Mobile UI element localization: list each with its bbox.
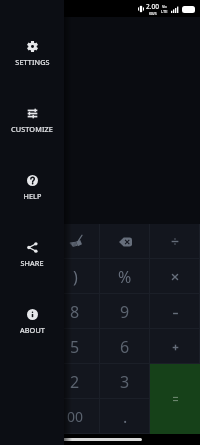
button[interactable]: ABOUT	[0, 304, 64, 335]
staticText: KB/S	[149, 11, 157, 16]
button[interactable]: )	[50, 259, 100, 294]
button[interactable]: Clear	[50, 224, 100, 259]
button[interactable]	[150, 224, 200, 259]
button[interactable]	[150, 364, 200, 434]
staticText: HELP	[23, 191, 42, 201]
staticText: 00	[67, 407, 84, 426]
button[interactable]: 2	[50, 364, 100, 399]
button[interactable]: (	[0, 259, 50, 294]
staticText: 6	[120, 336, 130, 358]
staticText: 2.00	[146, 2, 159, 11]
staticText: %	[118, 266, 132, 288]
staticText: )	[73, 266, 78, 288]
staticText: SETTINGS	[15, 57, 50, 67]
button[interactable]: .	[100, 399, 150, 434]
staticText: 2	[70, 371, 80, 393]
staticText: 8	[70, 301, 80, 323]
staticText: LTE	[161, 9, 168, 14]
button[interactable]	[150, 329, 200, 364]
staticText: 3	[120, 371, 130, 393]
button[interactable]: SHARE	[0, 237, 64, 268]
staticText: 5	[70, 336, 80, 358]
button[interactable]	[150, 294, 200, 329]
staticText: 7	[20, 301, 30, 323]
button[interactable]: Delete	[100, 224, 150, 259]
staticText: AC	[15, 231, 36, 253]
staticText: SHARE	[20, 258, 44, 268]
button[interactable]: %	[100, 259, 150, 294]
button[interactable]: 4	[0, 329, 50, 364]
button[interactable]: 7	[0, 294, 50, 329]
staticText: .	[123, 406, 128, 428]
button[interactable]: SETTINGS	[0, 36, 64, 67]
button[interactable]: 9	[100, 294, 150, 329]
button[interactable]: 00	[50, 399, 100, 434]
button[interactable]	[150, 259, 200, 294]
staticText: 9	[120, 301, 130, 323]
staticText: CUSTOMIZE	[11, 124, 53, 134]
staticText: ABOUT	[20, 325, 45, 335]
button[interactable]: CUSTOMIZE	[0, 103, 64, 134]
staticText: Vo	[162, 4, 167, 9]
button[interactable]: 3	[100, 364, 150, 399]
button[interactable]: 6	[100, 329, 150, 364]
button[interactable]: AC	[0, 224, 50, 259]
button[interactable]: 8	[50, 294, 100, 329]
button[interactable]: 5	[50, 329, 100, 364]
button[interactable]: HELP	[0, 170, 64, 201]
